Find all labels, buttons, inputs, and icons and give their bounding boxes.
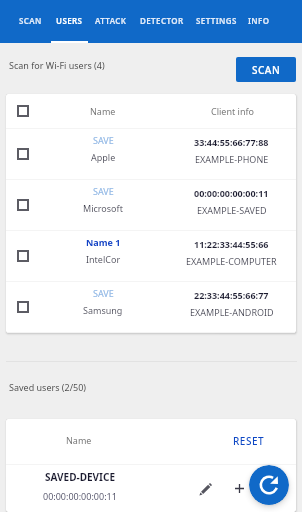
staticText: EXAMPLE-PHONE bbox=[195, 153, 269, 165]
staticText: Saved users (2/50) bbox=[9, 381, 87, 393]
staticText: Samsung bbox=[83, 304, 123, 316]
staticText: Name 1 bbox=[86, 236, 121, 248]
staticText: USERS bbox=[56, 15, 83, 26]
staticText: Apple bbox=[91, 151, 116, 163]
staticText: ATTACK bbox=[95, 15, 127, 26]
staticText: 22:33:44:55:66:77 bbox=[194, 289, 269, 301]
staticText: EXAMPLE-COMPUTER bbox=[186, 255, 277, 267]
staticText: SAVED-DEVICE bbox=[45, 470, 115, 484]
staticText: Name bbox=[90, 105, 116, 117]
staticText: SAVE bbox=[93, 134, 114, 146]
button[interactable]: USERS bbox=[49, 0, 89, 43]
staticText: 00:00:00:00:00:11 bbox=[43, 490, 117, 502]
button[interactable]: SAVED-DEVICE bbox=[6, 465, 296, 512]
staticText: Client info bbox=[211, 105, 254, 117]
button[interactable]: INFO bbox=[242, 0, 275, 43]
button[interactable]: Name 1 bbox=[6, 231, 296, 282]
staticText: 11:22:33:44:55:66 bbox=[194, 238, 269, 250]
staticText: Name bbox=[66, 434, 92, 446]
staticText: Microsoft bbox=[83, 202, 123, 214]
staticText: 33:44:55:66:77:88 bbox=[194, 136, 269, 148]
staticText: SAVE bbox=[93, 287, 114, 299]
button[interactable]: Edit bbox=[192, 476, 218, 502]
staticText: 00:00:00:00:00:11 bbox=[194, 187, 269, 199]
button[interactable]: SAVE bbox=[6, 282, 296, 333]
button[interactable]: DETECTOR bbox=[133, 0, 190, 43]
staticText: Scan for Wi-Fi users (4) bbox=[9, 59, 105, 71]
staticText: IntelCor bbox=[86, 253, 121, 265]
staticText: INFO bbox=[248, 15, 270, 26]
button[interactable]: ATTACK bbox=[88, 0, 133, 43]
button[interactable]: SETTINGS bbox=[189, 0, 243, 43]
button[interactable]: RESET bbox=[218, 419, 280, 464]
button[interactable]: SCAN bbox=[12, 0, 48, 43]
button[interactable]: Add bbox=[226, 475, 252, 501]
staticText: DETECTOR bbox=[140, 15, 184, 26]
staticText: SAVE bbox=[93, 185, 114, 197]
staticText: EXAMPLE-SAVED bbox=[197, 204, 267, 216]
staticText: SETTINGS bbox=[196, 15, 237, 26]
staticText: SCAN bbox=[252, 63, 281, 77]
button[interactable]: SCAN bbox=[236, 57, 296, 82]
button[interactable]: SAVE bbox=[6, 129, 296, 180]
staticText: SCAN bbox=[19, 15, 42, 26]
staticText: EXAMPLE-ANDROID bbox=[190, 306, 274, 318]
button[interactable]: Refresh bbox=[249, 465, 289, 505]
button[interactable]: SAVE bbox=[6, 180, 296, 231]
staticText: RESET bbox=[233, 434, 265, 448]
